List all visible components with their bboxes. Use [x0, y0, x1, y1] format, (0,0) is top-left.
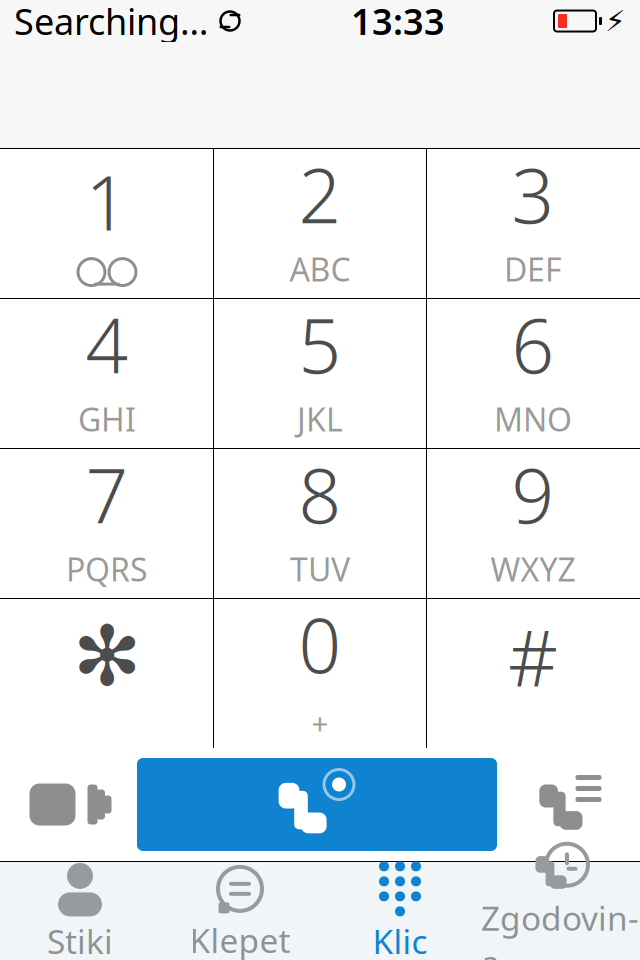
- staticText: Stiki: [47, 919, 113, 960]
- staticText: ABC: [289, 248, 350, 290]
- staticText: 0: [298, 594, 341, 694]
- button[interactable]: Klepet: [160, 862, 320, 960]
- staticText: PQRS: [66, 548, 148, 590]
- button[interactable]: Zgodovina: [480, 862, 640, 960]
- staticText: GHI: [78, 398, 136, 440]
- staticText: Zgodovina: [481, 896, 639, 960]
- button[interactable]: 5: [214, 299, 426, 448]
- staticText: #: [508, 605, 558, 708]
- button[interactable]: 4: [1, 299, 213, 448]
- staticText: 13:33: [351, 0, 445, 45]
- button[interactable]: 6: [427, 299, 639, 448]
- button[interactable]: 7: [1, 449, 213, 598]
- staticText: Klepet: [189, 918, 290, 960]
- staticText: 1: [85, 152, 128, 251]
- staticText: TUV: [290, 548, 350, 590]
- button[interactable]: 3: [427, 149, 639, 298]
- staticText: 6: [511, 295, 554, 394]
- button[interactable]: 9: [427, 449, 639, 598]
- staticText: 8: [298, 445, 341, 544]
- button[interactable]: #: [427, 599, 639, 748]
- staticText: DEF: [504, 248, 562, 290]
- staticText: +: [311, 704, 328, 743]
- staticText: 5: [298, 295, 341, 394]
- button[interactable]: 8: [214, 449, 426, 598]
- button[interactable]: ✻: [1, 599, 213, 748]
- staticText: Searching…: [14, 0, 208, 45]
- button[interactable]: Video call: [0, 748, 137, 861]
- button[interactable]: 1: [1, 149, 213, 298]
- staticText: 4: [85, 295, 128, 394]
- button[interactable]: 2: [214, 149, 426, 298]
- staticText: ⚡︎: [605, 4, 626, 38]
- button[interactable]: Stiki: [0, 862, 160, 960]
- staticText: 3: [511, 145, 554, 244]
- staticText: ✻: [72, 610, 141, 703]
- staticText: MNO: [494, 398, 572, 440]
- staticText: 9: [511, 445, 554, 544]
- button[interactable]: Call options: [497, 748, 640, 861]
- staticText: 2: [298, 145, 341, 244]
- button[interactable]: Klic: [320, 862, 480, 960]
- staticText: 7: [85, 445, 128, 544]
- button[interactable]: 0: [214, 599, 426, 748]
- button[interactable]: Call: [137, 758, 497, 851]
- staticText: JKL: [297, 398, 343, 440]
- staticText: Klic: [372, 919, 427, 960]
- staticText: WXYZ: [490, 548, 575, 590]
